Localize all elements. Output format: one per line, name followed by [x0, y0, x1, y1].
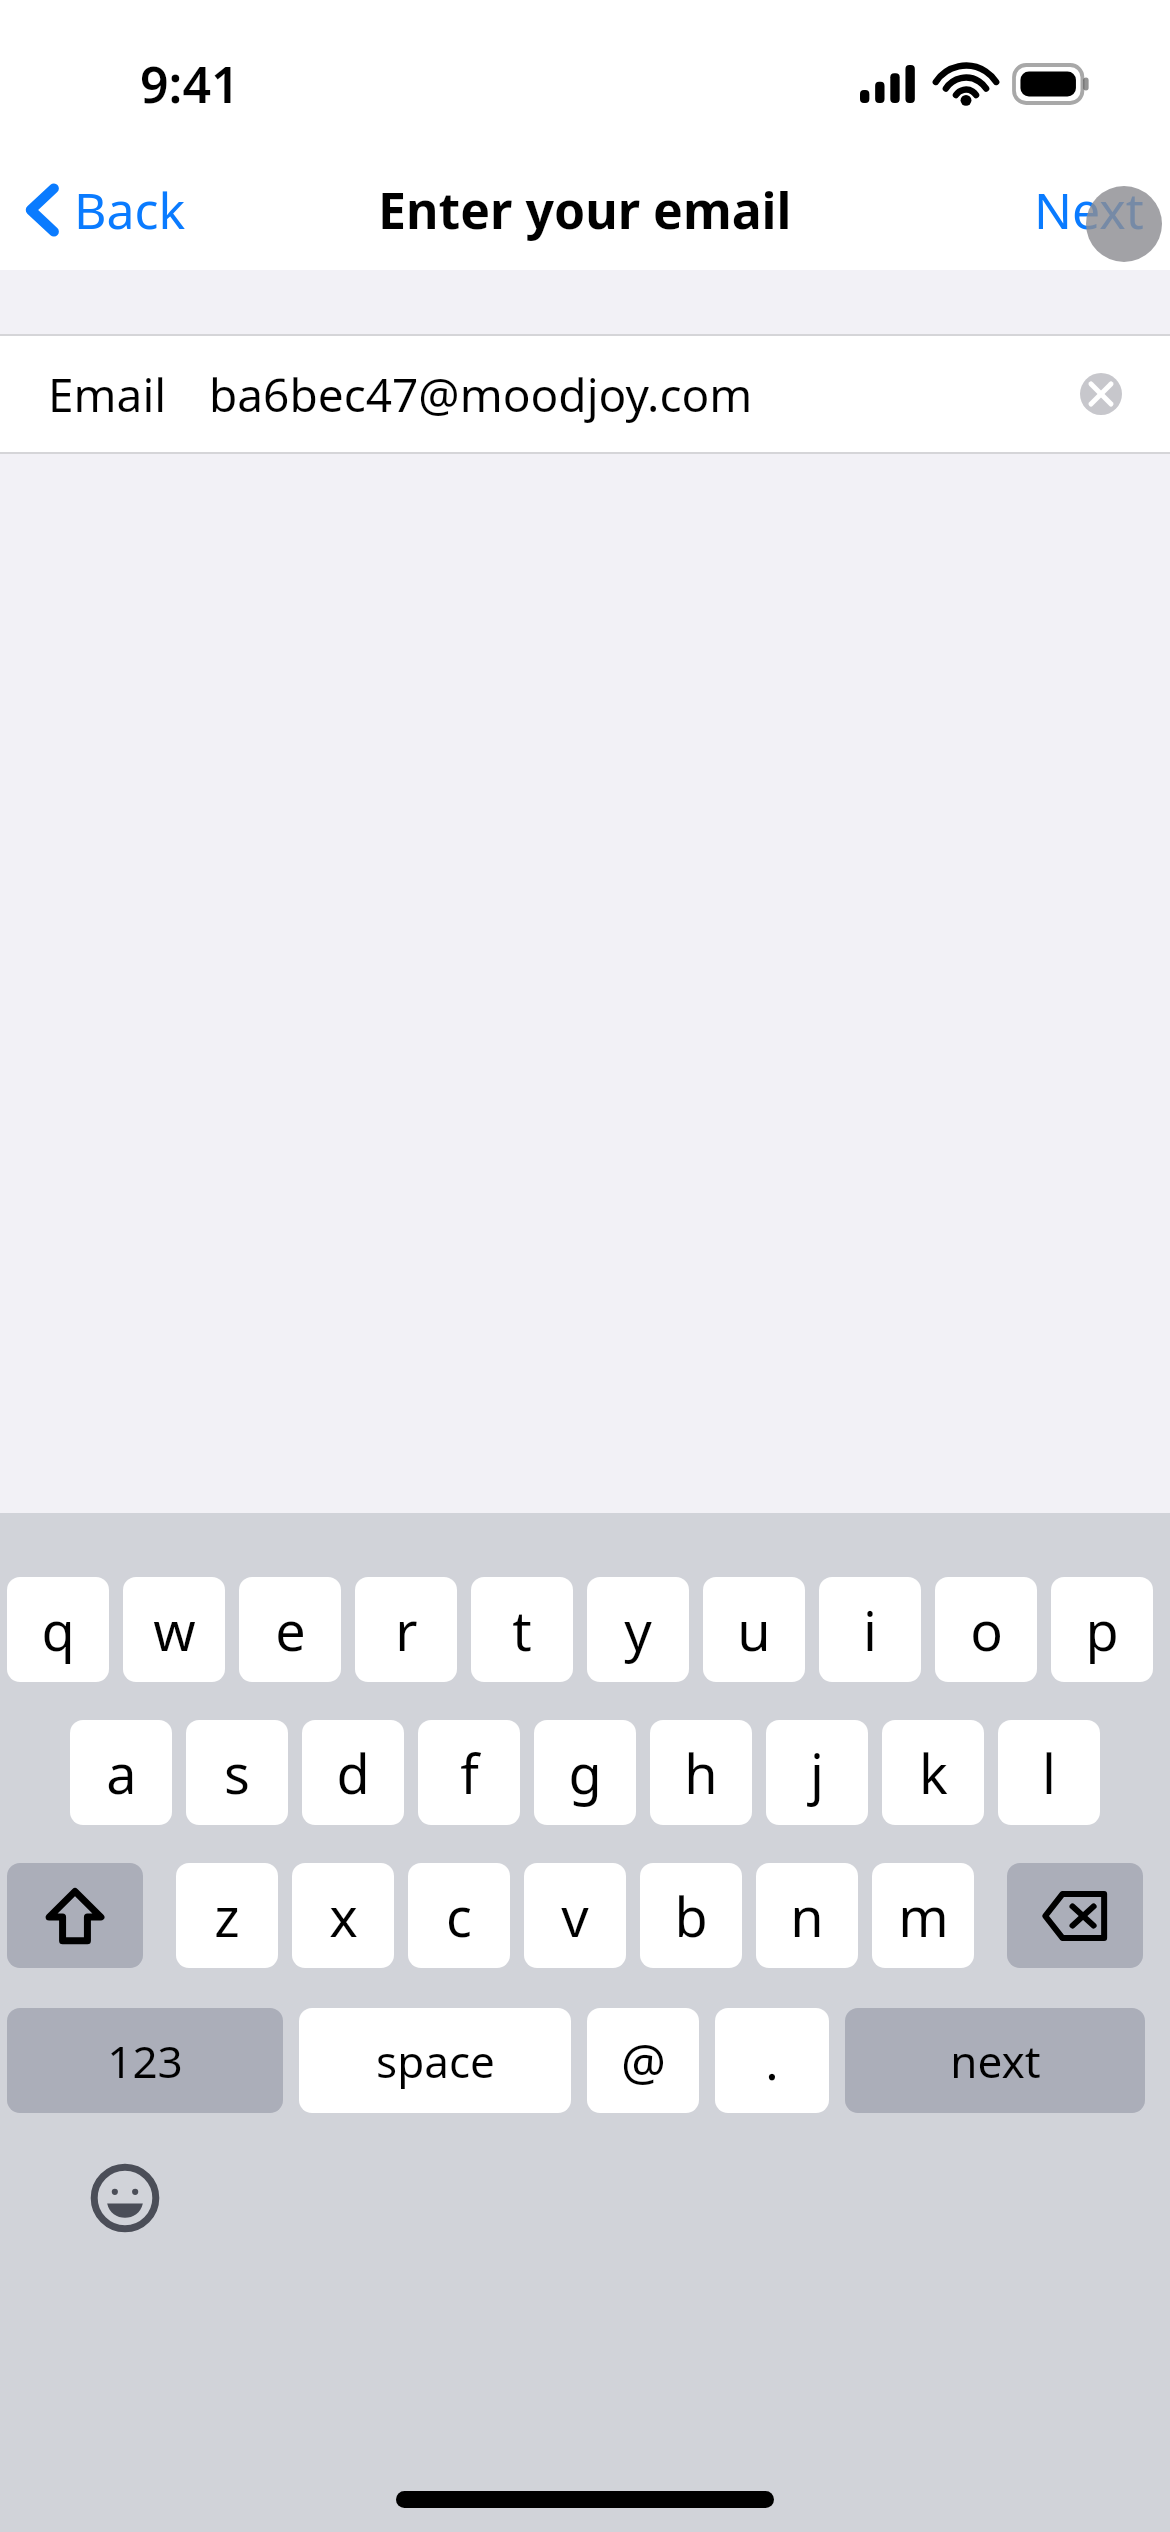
- button[interactable]: space: [299, 2008, 571, 2113]
- button[interactable]: g: [534, 1720, 636, 1825]
- staticText: next: [950, 2031, 1041, 2091]
- button[interactable]: Shift: [7, 1863, 143, 1968]
- button[interactable]: a: [70, 1720, 172, 1825]
- staticText: Back: [74, 176, 186, 244]
- staticText: s: [224, 1736, 250, 1810]
- button[interactable]: s: [186, 1720, 288, 1825]
- staticText: t: [512, 1593, 532, 1667]
- button[interactable]: 123: [7, 2008, 283, 2113]
- button[interactable]: n: [756, 1863, 858, 1968]
- staticText: m: [898, 1879, 949, 1953]
- button[interactable]: i: [819, 1577, 921, 1682]
- staticText: o: [970, 1593, 1003, 1667]
- button[interactable]: v: [524, 1863, 626, 1968]
- staticText: Next: [1034, 176, 1144, 244]
- staticText: .: [765, 2027, 779, 2095]
- button[interactable]: e: [239, 1577, 341, 1682]
- button[interactable]: Back: [0, 164, 206, 256]
- staticText: e: [275, 1593, 306, 1667]
- staticText: v: [561, 1879, 589, 1953]
- button[interactable]: Clear text: [1080, 373, 1122, 415]
- staticText: d: [336, 1736, 370, 1810]
- button[interactable]: y: [587, 1577, 689, 1682]
- staticText: p: [1085, 1593, 1119, 1667]
- staticText: Email: [48, 363, 167, 426]
- staticText: space: [376, 2031, 495, 2091]
- button[interactable]: k: [882, 1720, 984, 1825]
- staticText: ba6bec47@moodjoy.com: [209, 363, 753, 426]
- button[interactable]: l: [998, 1720, 1100, 1825]
- button[interactable]: d: [302, 1720, 404, 1825]
- button[interactable]: z: [176, 1863, 278, 1968]
- button[interactable]: r: [355, 1577, 457, 1682]
- staticText: n: [790, 1879, 824, 1953]
- staticText: l: [1042, 1736, 1056, 1810]
- button[interactable]: @: [587, 2008, 699, 2113]
- button[interactable]: o: [935, 1577, 1037, 1682]
- staticText: @: [621, 2027, 666, 2095]
- button[interactable]: w: [123, 1577, 225, 1682]
- staticText: y: [624, 1593, 652, 1667]
- button[interactable]: b: [640, 1863, 742, 1968]
- staticText: r: [395, 1593, 418, 1667]
- staticText: 123: [107, 2031, 183, 2091]
- button[interactable]: t: [471, 1577, 573, 1682]
- button[interactable]: Emoji keyboard: [90, 2163, 160, 2233]
- staticText: h: [684, 1736, 718, 1810]
- button[interactable]: Backspace: [1007, 1863, 1143, 1968]
- staticText: z: [214, 1879, 240, 1953]
- button[interactable]: h: [650, 1720, 752, 1825]
- staticText: f: [460, 1736, 479, 1810]
- staticText: i: [863, 1593, 877, 1667]
- staticText: Enter your email: [378, 176, 792, 244]
- staticText: q: [41, 1593, 75, 1667]
- button[interactable]: .: [715, 2008, 829, 2113]
- button[interactable]: c: [408, 1863, 510, 1968]
- staticText: x: [329, 1879, 358, 1953]
- button[interactable]: j: [766, 1720, 868, 1825]
- button[interactable]: q: [7, 1577, 109, 1682]
- button[interactable]: f: [418, 1720, 520, 1825]
- button[interactable]: next: [845, 2008, 1145, 2113]
- staticText: a: [106, 1736, 137, 1810]
- staticText: j: [810, 1736, 824, 1810]
- button[interactable]: p: [1051, 1577, 1153, 1682]
- staticText: b: [674, 1879, 708, 1953]
- staticText: u: [737, 1593, 771, 1667]
- button[interactable]: x: [292, 1863, 394, 1968]
- button[interactable]: u: [703, 1577, 805, 1682]
- button[interactable]: Next: [1014, 164, 1170, 256]
- staticText: c: [446, 1879, 472, 1953]
- staticText: g: [568, 1736, 602, 1810]
- button[interactable]: m: [872, 1863, 974, 1968]
- staticText: k: [919, 1736, 948, 1810]
- staticText: w: [153, 1593, 196, 1667]
- staticText: 9:41: [140, 50, 240, 118]
- button[interactable]: Email: [0, 336, 1170, 452]
